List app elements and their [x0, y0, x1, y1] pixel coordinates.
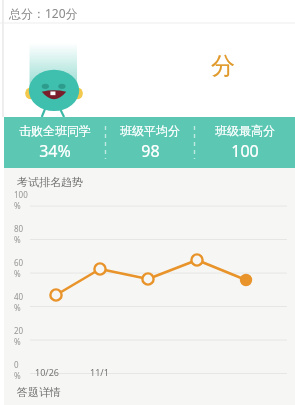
staticText: % — [14, 234, 21, 245]
staticText: 100 — [14, 189, 28, 200]
staticText: 答题详情 — [17, 385, 61, 399]
button[interactable]: 击败全班同学 — [4, 117, 105, 168]
button[interactable]: 班级最高分 — [195, 117, 295, 168]
staticText: 10/26 — [35, 366, 59, 378]
staticText: 11/1 — [90, 366, 109, 378]
staticText: 20 — [14, 325, 24, 336]
button[interactable]: 班级平均分 — [106, 117, 194, 168]
staticText: % — [14, 200, 21, 211]
staticText: 班级平均分 — [120, 123, 180, 138]
button[interactable]: 答题详情 — [4, 383, 295, 405]
staticText: 班级最高分 — [215, 123, 275, 138]
staticText: 98 — [141, 140, 160, 162]
staticText: 40 — [14, 291, 24, 302]
staticText: 分 — [211, 51, 235, 81]
staticText: % — [14, 370, 21, 381]
staticText: 击败全班同学 — [19, 123, 91, 138]
staticText: 60 — [14, 257, 24, 268]
staticText: % — [14, 268, 21, 279]
staticText: 总分：120分 — [9, 5, 78, 21]
staticText: 考试排名趋势 — [17, 175, 83, 189]
staticText: % — [14, 302, 21, 313]
staticText: 0 — [14, 359, 19, 370]
staticText: 80 — [14, 223, 24, 234]
staticText: 34% — [39, 140, 71, 162]
staticText: % — [14, 336, 21, 347]
staticText: 100 — [231, 140, 259, 162]
